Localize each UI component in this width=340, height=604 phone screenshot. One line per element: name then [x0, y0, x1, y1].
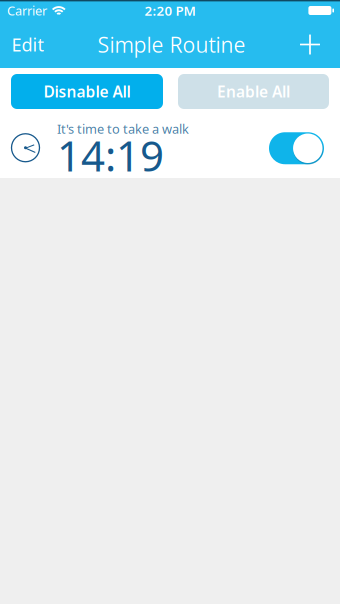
- staticText: 14:19: [57, 127, 164, 184]
- staticText: Edit: [11, 32, 44, 57]
- staticText: Carrier: [7, 2, 47, 19]
- staticText: Enable All: [217, 81, 290, 102]
- staticText: 2:20 PM: [144, 1, 195, 20]
- button[interactable]: Enable All: [178, 74, 329, 109]
- staticText: It's time to take a walk: [57, 120, 189, 137]
- staticText: Simple Routine: [97, 30, 245, 59]
- staticText: Disnable All: [43, 81, 130, 102]
- button[interactable]: Disnable All: [11, 74, 163, 109]
- button[interactable]: Add routine: [290, 21, 340, 68]
- button[interactable]: It's time to take a walk: [0, 112, 340, 178]
- button[interactable]: Edit: [0, 21, 59, 68]
